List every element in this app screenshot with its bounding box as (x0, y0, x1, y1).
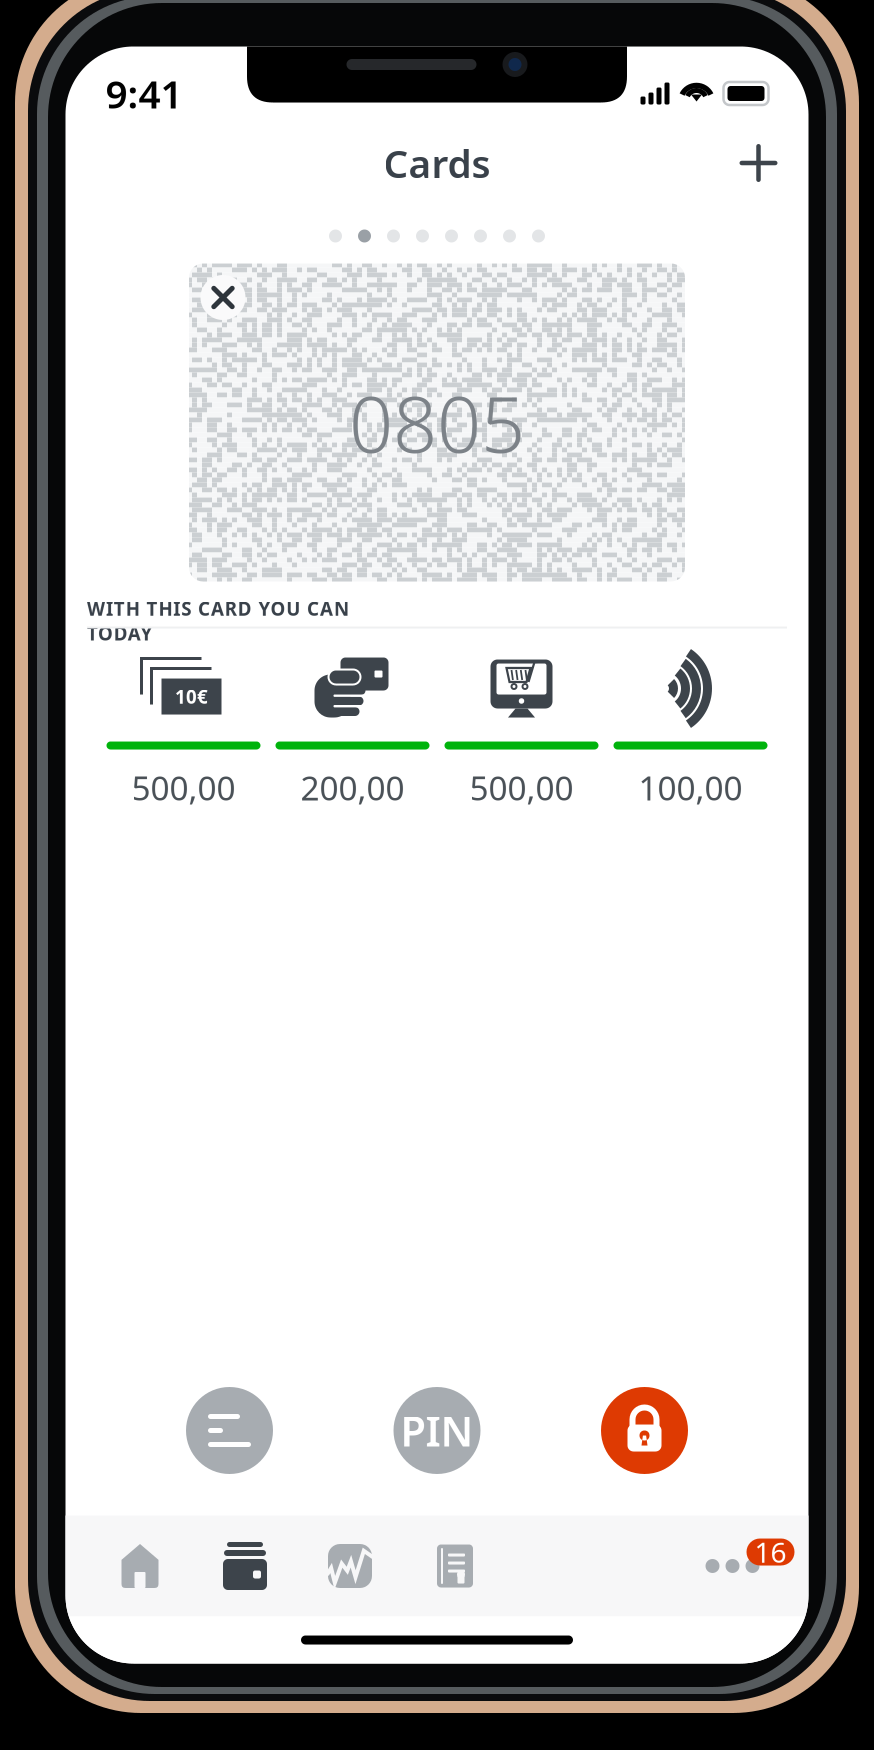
staticText: WITH THIS CARD YOU CAN TODAY (87, 596, 421, 621)
button[interactable]: PIN (381, 1374, 493, 1486)
staticText: 500,00 (469, 765, 573, 810)
button[interactable]: Investments (297, 1520, 402, 1612)
staticText: 500,00 (131, 765, 235, 810)
button[interactable]: Lock card (588, 1374, 700, 1486)
staticText: PIN (400, 1403, 473, 1458)
staticText: 0805 (349, 371, 525, 474)
button[interactable]: 10€ (99, 647, 268, 810)
staticText: 200,00 (300, 765, 404, 810)
button[interactable]: More, 16 notifications (692, 1515, 800, 1616)
button[interactable]: Transactions (173, 1374, 285, 1486)
button[interactable]: Cards (192, 1520, 297, 1612)
button[interactable]: 100,00 (606, 647, 775, 810)
button[interactable]: Home (87, 1520, 192, 1612)
staticText: 100,00 (638, 765, 742, 810)
button[interactable]: 200,00 (268, 647, 437, 810)
button[interactable]: Add card (721, 126, 795, 200)
staticText: Cards (383, 137, 490, 189)
staticText: 16 (754, 1533, 786, 1571)
staticText: 9:41 (105, 68, 182, 119)
button[interactable]: Close card (193, 267, 253, 327)
staticText: 10€ (175, 684, 208, 709)
button[interactable]: 500,00 (437, 647, 606, 810)
button[interactable]: Documents (402, 1520, 507, 1612)
